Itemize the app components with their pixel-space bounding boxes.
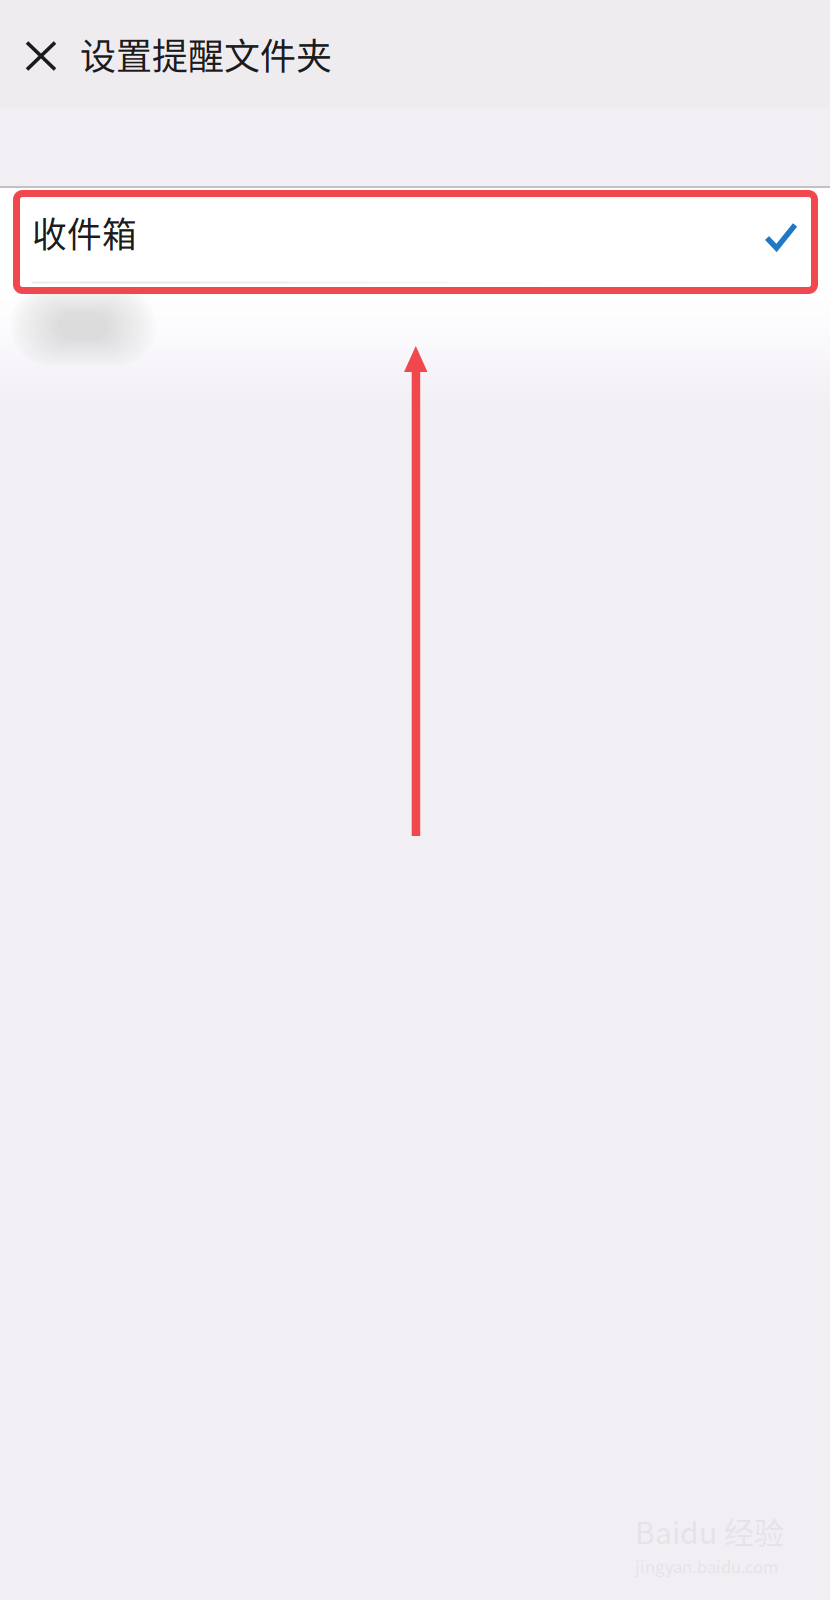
staticText: 设置提醒文件夹 xyxy=(80,28,332,80)
button[interactable]: 收件箱 xyxy=(0,188,830,280)
staticText: Baidu 经验 xyxy=(635,1509,784,1553)
staticText: jingyan.baidu.com xyxy=(635,1554,779,1578)
staticText: 收件箱 xyxy=(32,207,137,258)
button[interactable]: Close xyxy=(12,17,69,91)
